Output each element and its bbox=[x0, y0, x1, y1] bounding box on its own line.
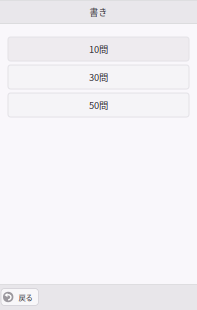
staticText: 50問 bbox=[89, 98, 108, 112]
staticText: 書き bbox=[89, 6, 107, 18]
staticText: 10問 bbox=[89, 42, 108, 56]
button[interactable]: 戻る bbox=[1, 288, 38, 305]
button[interactable]: 50問 bbox=[8, 93, 189, 117]
staticText: 戻る bbox=[18, 292, 32, 302]
staticText: 30問 bbox=[89, 70, 108, 84]
button[interactable]: 30問 bbox=[8, 65, 189, 89]
button[interactable]: 10問 bbox=[8, 37, 189, 61]
